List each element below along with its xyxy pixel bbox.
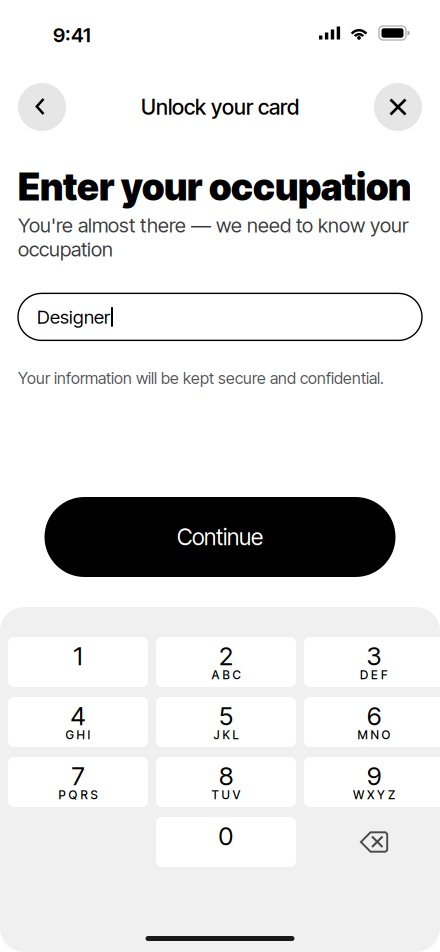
staticText: G H I: [65, 728, 90, 742]
staticText: W X Y Z: [353, 788, 395, 802]
staticText: Unlock your card: [141, 94, 299, 120]
button[interactable]: 9: [304, 757, 440, 807]
staticText: 8: [219, 761, 233, 791]
staticText: Your information will be kept secure and…: [18, 368, 384, 388]
button[interactable]: 4: [8, 697, 148, 747]
button[interactable]: 0: [156, 817, 296, 867]
staticText: 9:41: [53, 23, 91, 47]
staticText: M N O: [357, 728, 390, 742]
staticText: 6: [367, 701, 381, 731]
button[interactable]: Continue: [44, 497, 395, 577]
staticText: D E F: [360, 668, 388, 682]
staticText: 5: [219, 701, 233, 731]
staticText: Continue: [177, 523, 263, 551]
button[interactable]: 6: [304, 697, 440, 747]
staticText: J K L: [213, 728, 238, 742]
staticText: Enter your occupation: [18, 164, 411, 210]
staticText: 4: [70, 701, 85, 731]
button[interactable]: 8: [156, 757, 296, 807]
staticText: You're almost there — we need to know yo…: [18, 213, 409, 261]
staticText: 7: [71, 761, 84, 791]
button[interactable]: 5: [156, 697, 296, 747]
staticText: P Q R S: [58, 788, 97, 802]
button[interactable]: Back: [18, 83, 66, 131]
staticText: 0: [218, 821, 233, 851]
staticText: 1: [73, 641, 82, 671]
staticText: T U V: [211, 788, 240, 802]
staticText: A B C: [211, 668, 240, 682]
staticText: Designer: [37, 306, 110, 328]
button[interactable]: 7: [8, 757, 148, 807]
button[interactable]: Delete: [304, 817, 440, 867]
staticText: 3: [366, 641, 381, 671]
staticText: 2: [219, 641, 233, 671]
button[interactable]: 3: [304, 637, 440, 687]
button[interactable]: 1: [8, 637, 148, 687]
staticText: 9: [367, 761, 381, 791]
button[interactable]: Close: [374, 83, 422, 131]
button[interactable]: 2: [156, 637, 296, 687]
